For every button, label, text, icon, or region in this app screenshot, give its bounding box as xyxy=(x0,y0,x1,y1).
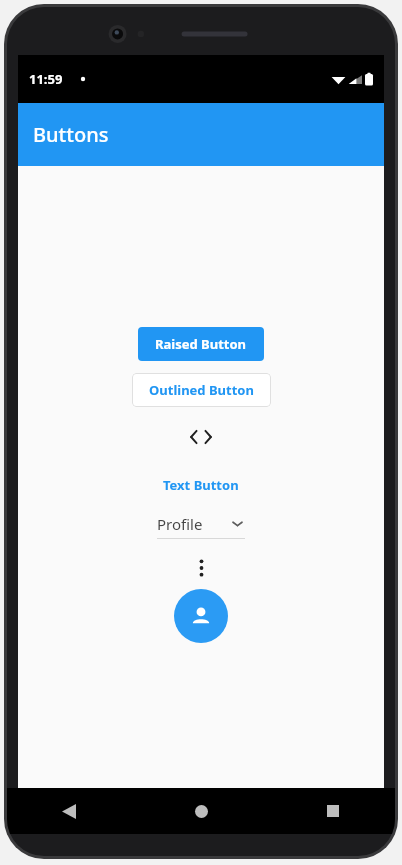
button[interactable]: Profile xyxy=(174,589,228,643)
button[interactable]: Profile xyxy=(157,514,245,539)
button[interactable]: Text Button xyxy=(149,469,253,501)
button[interactable]: More options xyxy=(184,554,218,582)
button[interactable]: Recent apps xyxy=(311,789,355,833)
button[interactable]: Raised Button xyxy=(138,327,264,361)
button[interactable]: Outlined Button xyxy=(132,373,271,407)
button[interactable]: Home xyxy=(179,789,223,833)
staticText: Profile xyxy=(157,514,230,534)
button[interactable]: Navigate previous and next xyxy=(179,425,223,449)
staticText: Outlined Button xyxy=(149,381,254,399)
staticText: Text Button xyxy=(163,476,239,494)
staticText: Buttons xyxy=(33,121,109,148)
button[interactable]: Back xyxy=(47,789,91,833)
staticText: Raised Button xyxy=(155,335,247,353)
staticText: 11:59 xyxy=(29,70,63,88)
